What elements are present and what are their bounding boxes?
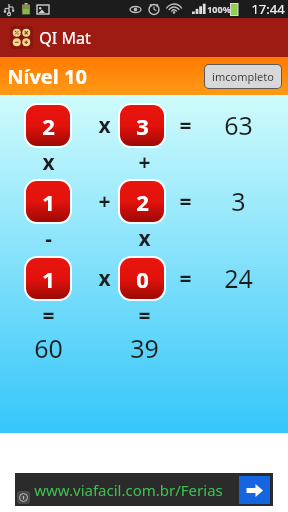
staticText: 3 xyxy=(136,111,149,141)
staticText: 1 xyxy=(42,187,55,217)
staticText: - xyxy=(45,224,52,253)
button[interactable]: www.viafacil.com.br/Ferias xyxy=(15,473,273,506)
button[interactable]: imcompleto xyxy=(205,65,281,88)
staticText: 0 xyxy=(136,264,149,294)
staticText: 3 xyxy=(231,184,246,218)
staticText: Nível 10 xyxy=(7,63,87,90)
staticText: QI Mat xyxy=(39,27,91,49)
staticText: 24 xyxy=(224,261,253,295)
button[interactable]: Ad info xyxy=(17,491,30,504)
staticText: = xyxy=(42,301,55,330)
staticText: 100% xyxy=(207,3,231,15)
staticText: + xyxy=(138,148,151,177)
button[interactable]: 1 xyxy=(26,181,70,222)
button[interactable]: 3 xyxy=(120,105,164,146)
button[interactable]: 2 xyxy=(26,105,70,146)
staticText: 17:44 xyxy=(251,0,285,18)
staticText: = xyxy=(138,301,151,330)
staticText: 1 xyxy=(42,264,55,294)
staticText: 2 xyxy=(136,187,149,217)
button[interactable]: 2 xyxy=(120,181,164,222)
staticText: imcompleto xyxy=(212,69,274,84)
staticText: = xyxy=(179,111,192,140)
staticText: = xyxy=(179,187,192,216)
staticText: 2 xyxy=(42,111,55,141)
button[interactable]: 0 xyxy=(120,258,164,299)
button[interactable]: 1 xyxy=(26,258,70,299)
button[interactable]: Open ad xyxy=(239,476,270,504)
staticText: = xyxy=(179,264,192,293)
staticText: 39 xyxy=(130,331,159,365)
staticText: x xyxy=(138,224,151,253)
staticText: x xyxy=(42,148,55,177)
staticText: x xyxy=(98,111,111,140)
staticText: 60 xyxy=(34,331,63,365)
staticText: x xyxy=(98,264,111,293)
staticText: 63 xyxy=(224,108,253,142)
staticText: + xyxy=(98,187,111,216)
staticText: www.viafacil.com.br/Ferias xyxy=(34,480,223,500)
